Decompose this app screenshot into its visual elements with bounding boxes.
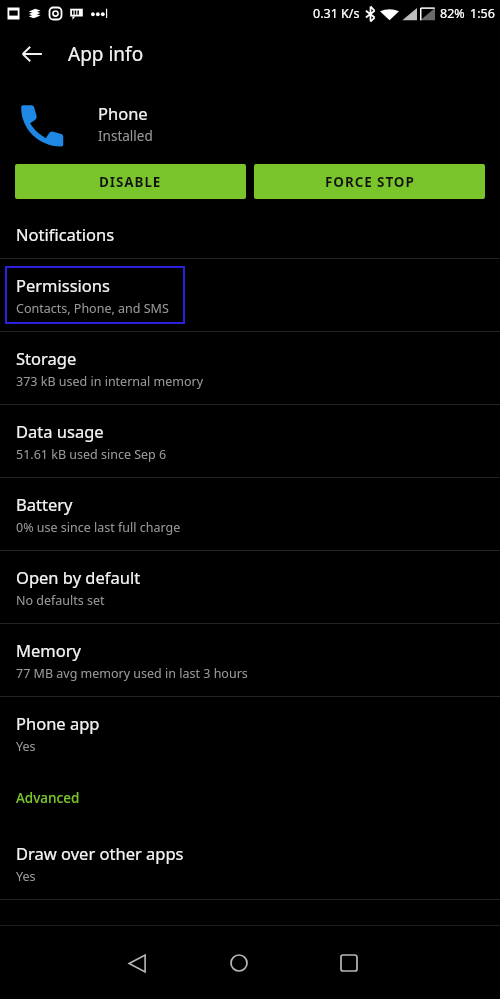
staticText: Storage: [16, 347, 77, 369]
staticText: Advanced: [16, 789, 80, 807]
staticText: FORCE STOP: [325, 173, 415, 191]
staticText: Notifications: [16, 223, 115, 245]
staticText: Phone app: [16, 712, 100, 734]
button[interactable]: Phone: [0, 82, 500, 164]
button[interactable]: Back: [108, 934, 166, 992]
staticText: Phone: [98, 102, 148, 124]
staticText: Yes: [16, 738, 36, 755]
button[interactable]: DISABLE: [15, 164, 246, 199]
staticText: 0% use since last full charge: [16, 519, 181, 536]
button[interactable]: Advanced: [0, 769, 500, 827]
staticText: 51.61 kB used since Sep 6: [16, 446, 167, 463]
button[interactable]: Data usage: [0, 405, 500, 477]
staticText: 373 kB used in internal memory: [16, 373, 204, 390]
staticText: Draw over other apps: [16, 842, 184, 864]
staticText: 0.31 K/s: [313, 5, 360, 22]
button[interactable]: Permissions: [0, 259, 500, 331]
staticText: Battery: [16, 493, 73, 515]
staticText: Permissions: [16, 274, 110, 296]
button[interactable]: Memory: [0, 624, 500, 696]
button[interactable]: Battery: [0, 478, 500, 550]
staticText: 1:56: [470, 5, 495, 22]
staticText: 82%: [440, 5, 465, 22]
staticText: Open by default: [16, 566, 141, 588]
staticText: DISABLE: [99, 173, 162, 191]
button[interactable]: Recent apps: [320, 934, 378, 992]
staticText: Memory: [16, 639, 81, 661]
staticText: Yes: [16, 868, 36, 885]
staticText: Installed: [98, 127, 153, 145]
button[interactable]: FORCE STOP: [254, 164, 485, 199]
button[interactable]: Storage: [0, 332, 500, 404]
button[interactable]: Open by default: [0, 551, 500, 623]
button[interactable]: Back: [8, 30, 56, 78]
staticText: App info: [68, 41, 144, 67]
button[interactable]: Home: [210, 934, 268, 992]
staticText: 77 MB avg memory used in last 3 hours: [16, 665, 248, 682]
button[interactable]: Draw over other apps: [0, 827, 500, 899]
staticText: No defaults set: [16, 592, 105, 609]
staticText: Data usage: [16, 420, 104, 442]
button[interactable]: Phone app: [0, 697, 500, 769]
staticText: Contacts, Phone, and SMS: [16, 300, 169, 317]
button[interactable]: Notifications: [0, 209, 500, 258]
